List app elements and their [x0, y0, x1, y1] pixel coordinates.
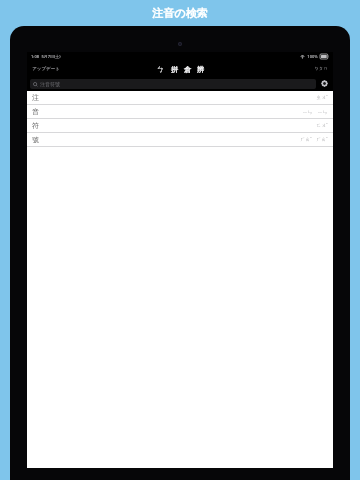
staticText: ㄧㄣ [302, 109, 313, 115]
staticText: 5月7日(土) [41, 54, 61, 59]
staticText: ㄅ [156, 64, 165, 74]
staticText: アップデート [32, 66, 60, 72]
staticText: 拼 [171, 65, 178, 74]
staticText: 1:08 [31, 54, 39, 59]
staticText: 符 [32, 121, 39, 130]
button[interactable]: 符 [27, 119, 333, 132]
staticText: 注音符號 [40, 81, 60, 87]
staticText: ㄅㄆㄇ [314, 66, 328, 72]
button[interactable]: 注音符號 [30, 79, 316, 89]
staticText: 辨 [197, 65, 204, 74]
staticText: ㄧㄣ [317, 109, 328, 115]
staticText: 倉 [184, 65, 191, 74]
staticText: ㄏㄠˋ [300, 136, 312, 143]
button[interactable]: 音 [27, 105, 333, 118]
button[interactable]: ㄅㄆㄇ [314, 66, 328, 72]
staticText: 注 [32, 93, 39, 102]
staticText: 音 [32, 107, 39, 116]
button[interactable]: 號 [27, 133, 333, 146]
staticText: 號 [32, 135, 39, 144]
button[interactable]: 注 [27, 91, 333, 104]
staticText: ㄓㄨˋ [316, 94, 328, 101]
staticText: 100% [307, 54, 318, 59]
button[interactable]: Settings [319, 78, 330, 89]
staticText: ㄈㄨˊ [316, 122, 328, 129]
staticText: 注音の検索 [152, 6, 208, 20]
button[interactable]: アップデート [32, 66, 60, 72]
staticText: ㄏㄠˊ [316, 136, 328, 143]
